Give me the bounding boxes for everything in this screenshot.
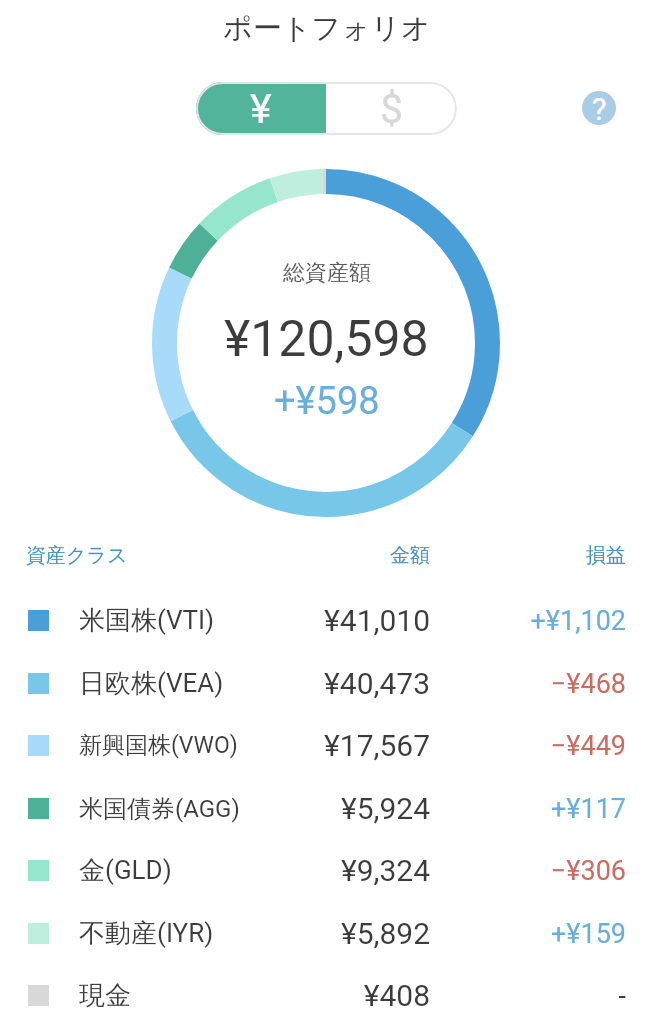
staticText: - [618, 980, 626, 1012]
staticText: +¥598 [274, 379, 380, 424]
button[interactable]: $ [326, 82, 457, 135]
staticText: ¥ [250, 85, 272, 133]
button[interactable]: 米国株(VTI) [0, 589, 653, 652]
staticText: −¥468 [550, 668, 626, 700]
staticText: 金(GLD) [79, 854, 172, 887]
button[interactable]: 金(GLD) [0, 839, 653, 902]
staticText: ¥41,010 [324, 603, 430, 638]
staticText: ポートフォリオ [223, 10, 431, 47]
staticText: 総資産額 [283, 259, 371, 287]
staticText: +¥1,102 [530, 605, 626, 637]
staticText: 資産クラス [26, 543, 128, 568]
staticText: +¥117 [550, 793, 626, 825]
staticText: 日欧株(VEA) [79, 667, 224, 700]
staticText: 米国株(VTI) [79, 604, 215, 637]
staticText: 損益 [586, 543, 626, 568]
staticText: −¥306 [550, 855, 626, 887]
button[interactable]: 不動産(IYR) [0, 902, 653, 965]
staticText: ? [592, 91, 607, 125]
staticText: $ [380, 85, 404, 133]
staticText: 米国債券(AGG) [79, 794, 240, 824]
staticText: −¥449 [550, 730, 626, 762]
staticText: ¥120,598 [224, 310, 429, 369]
staticText: ¥5,892 [340, 916, 430, 951]
button[interactable]: 米国債券(AGG) [0, 777, 653, 840]
staticText: ¥408 [363, 978, 430, 1013]
staticText: ¥9,324 [340, 853, 430, 888]
button[interactable]: 新興国株(VWO) [0, 714, 653, 777]
button[interactable]: ¥ [196, 82, 326, 135]
staticText: ¥5,924 [340, 791, 430, 826]
button[interactable]: Help [578, 87, 620, 129]
staticText: ¥40,473 [324, 666, 430, 701]
staticText: 新興国株(VWO) [79, 731, 238, 760]
staticText: 金額 [390, 543, 430, 568]
staticText: 不動産(IYR) [79, 917, 214, 950]
staticText: +¥159 [550, 918, 626, 950]
staticText: ¥17,567 [324, 728, 430, 763]
button[interactable]: 日欧株(VEA) [0, 652, 653, 715]
staticText: 現金 [79, 979, 131, 1012]
button[interactable]: 現金 [0, 964, 653, 1024]
